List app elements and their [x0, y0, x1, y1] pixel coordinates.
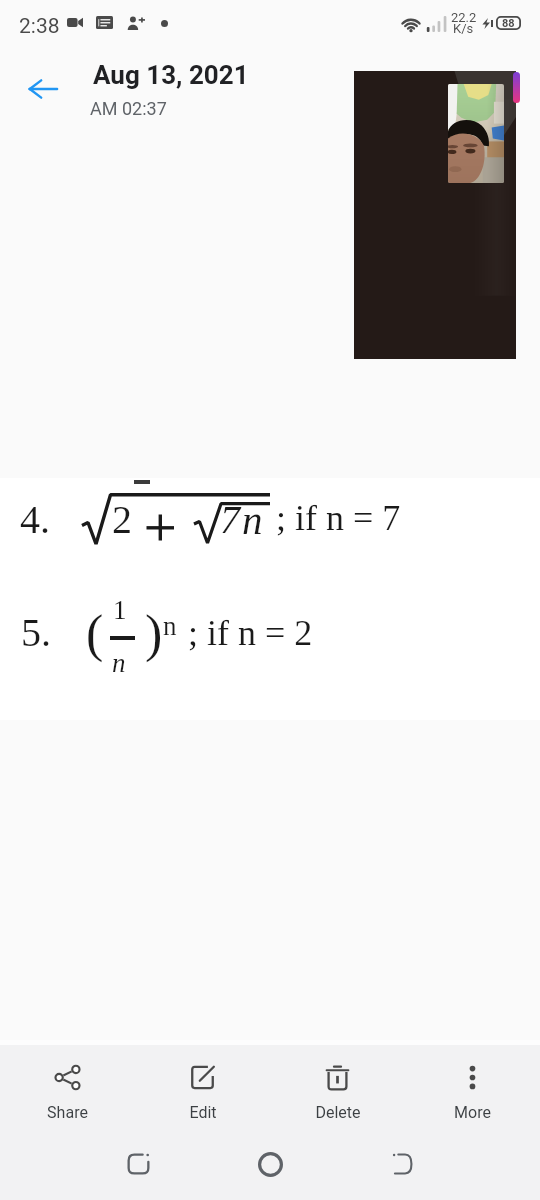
staticText: 5.: [21, 610, 51, 654]
staticText: 2:38: [19, 14, 60, 39]
staticText: 1: [113, 595, 127, 625]
button[interactable]: Video call photo: [354, 71, 516, 359]
button[interactable]: Back: [378, 1140, 426, 1188]
staticText: Share: [47, 1103, 88, 1122]
staticText: n: [112, 648, 126, 678]
staticText: ; if n = 2: [188, 613, 313, 653]
staticText: ): [145, 605, 163, 663]
staticText: n: [242, 497, 263, 542]
staticText: Delete: [315, 1103, 361, 1122]
staticText: 22.2: [451, 10, 477, 25]
staticText: 2: [112, 497, 132, 541]
button[interactable]: Share: [0, 1045, 135, 1140]
staticText: More: [454, 1103, 491, 1122]
staticText: 4.: [20, 497, 50, 541]
button[interactable]: Back: [16, 62, 70, 116]
button[interactable]: More: [405, 1045, 540, 1140]
staticText: Aug 13, 2021: [93, 60, 249, 90]
staticText: K/s: [453, 21, 474, 36]
staticText: (: [86, 605, 104, 663]
button[interactable]: Edit: [135, 1045, 270, 1140]
staticText: AM 02:37: [90, 98, 167, 119]
staticText: 7: [220, 497, 240, 541]
staticText: ; if n = 7: [276, 498, 401, 538]
staticText: 88: [502, 17, 515, 30]
staticText: Edit: [189, 1103, 217, 1122]
staticText: n: [163, 611, 177, 641]
button[interactable]: Recent apps: [114, 1140, 162, 1188]
button[interactable]: Delete: [270, 1045, 405, 1140]
button[interactable]: Home: [246, 1140, 294, 1188]
